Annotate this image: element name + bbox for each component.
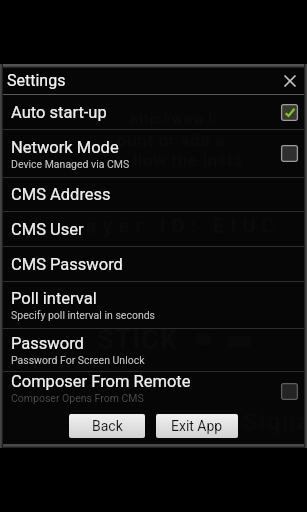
staticText: CMS User <box>11 220 84 239</box>
button[interactable]: Close <box>279 70 301 92</box>
staticText: Composer Opens From CMS <box>11 392 144 404</box>
button[interactable]: Disabled <box>280 382 299 401</box>
staticText: Password <box>11 334 84 353</box>
button[interactable]: Exit App <box>156 414 238 438</box>
button[interactable]: Password <box>0 329 307 371</box>
button[interactable]: Network Mode <box>0 130 307 177</box>
button[interactable]: Poll interval <box>0 282 307 328</box>
staticText: CMS Address <box>11 185 111 204</box>
button[interactable]: CMS Address <box>0 178 307 211</box>
staticText: Signa <box>243 409 307 436</box>
staticText: CMS Password <box>11 255 123 274</box>
button[interactable]: Enabled <box>280 103 299 122</box>
button[interactable]: CMS Password <box>0 247 307 281</box>
staticText: Composer From Remote <box>11 372 191 391</box>
staticText: ount or add a <box>117 130 226 150</box>
staticText: Specify poll interval in seconds <box>11 309 156 321</box>
button[interactable]: Back <box>69 414 145 438</box>
staticText: STICK <box>97 324 179 356</box>
button[interactable]: CMS User <box>0 212 307 246</box>
staticText: Exit App <box>171 418 223 434</box>
staticText: Device Managed via CMS <box>11 158 130 170</box>
button[interactable]: Disabled <box>280 144 299 163</box>
staticText: Settings <box>7 71 66 90</box>
button[interactable]: Auto start-up <box>0 95 307 129</box>
staticText: Auto start-up <box>11 103 107 122</box>
staticText: Password For Screen Unlock <box>11 354 145 366</box>
staticText: Poll interval <box>11 289 97 308</box>
staticText: Back <box>92 418 123 434</box>
staticText: Network Mode <box>11 138 119 157</box>
